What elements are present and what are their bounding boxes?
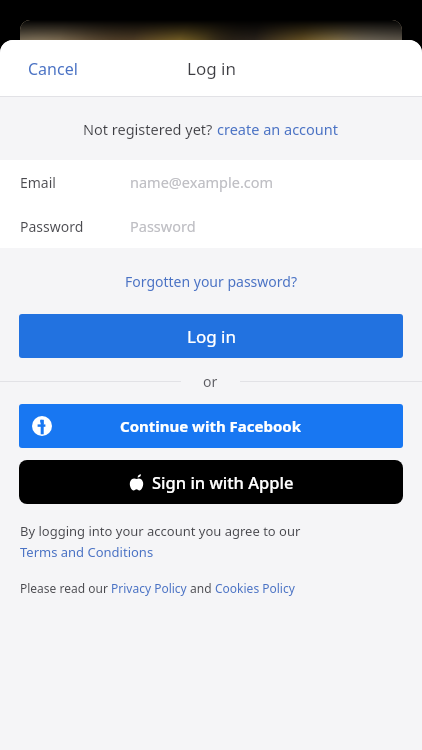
staticText: or: [203, 372, 218, 391]
staticText: Forgotten your password?: [125, 272, 297, 291]
button[interactable]: Email: [0, 160, 422, 204]
staticText: By logging into your account you agree t…: [20, 522, 301, 540]
staticText: Not registered yet?: [83, 119, 217, 139]
staticText: Continue with Facebook: [120, 416, 302, 436]
staticText: Cancel: [28, 58, 78, 80]
staticText: Sign in with Apple: [152, 471, 294, 493]
button[interactable]: Cancel: [0, 46, 106, 92]
staticText: Privacy Policy: [111, 580, 187, 596]
staticText: Password: [130, 216, 196, 236]
button[interactable]: Privacy Policy: [111, 580, 187, 596]
staticText: name@example.com: [130, 172, 274, 192]
button[interactable]: create an account: [217, 119, 339, 139]
button[interactable]: Password: [0, 204, 422, 248]
button[interactable]: Terms and Conditions: [20, 543, 154, 561]
staticText: Please read our: [20, 580, 111, 596]
button[interactable]: Sign in with Apple: [19, 460, 403, 504]
button[interactable]: Continue with Facebook: [19, 404, 403, 448]
staticText: Terms and Conditions: [20, 543, 154, 561]
staticText: and: [187, 580, 215, 596]
staticText: Log in: [187, 57, 236, 80]
staticText: Log in: [187, 325, 236, 348]
button[interactable]: Log in: [19, 314, 403, 358]
staticText: Email: [20, 173, 56, 192]
button[interactable]: Forgotten your password?: [113, 264, 309, 299]
staticText: Password: [20, 217, 84, 236]
staticText: create an account: [217, 119, 339, 139]
button[interactable]: Cookies Policy: [215, 580, 295, 596]
staticText: Cookies Policy: [215, 580, 295, 596]
